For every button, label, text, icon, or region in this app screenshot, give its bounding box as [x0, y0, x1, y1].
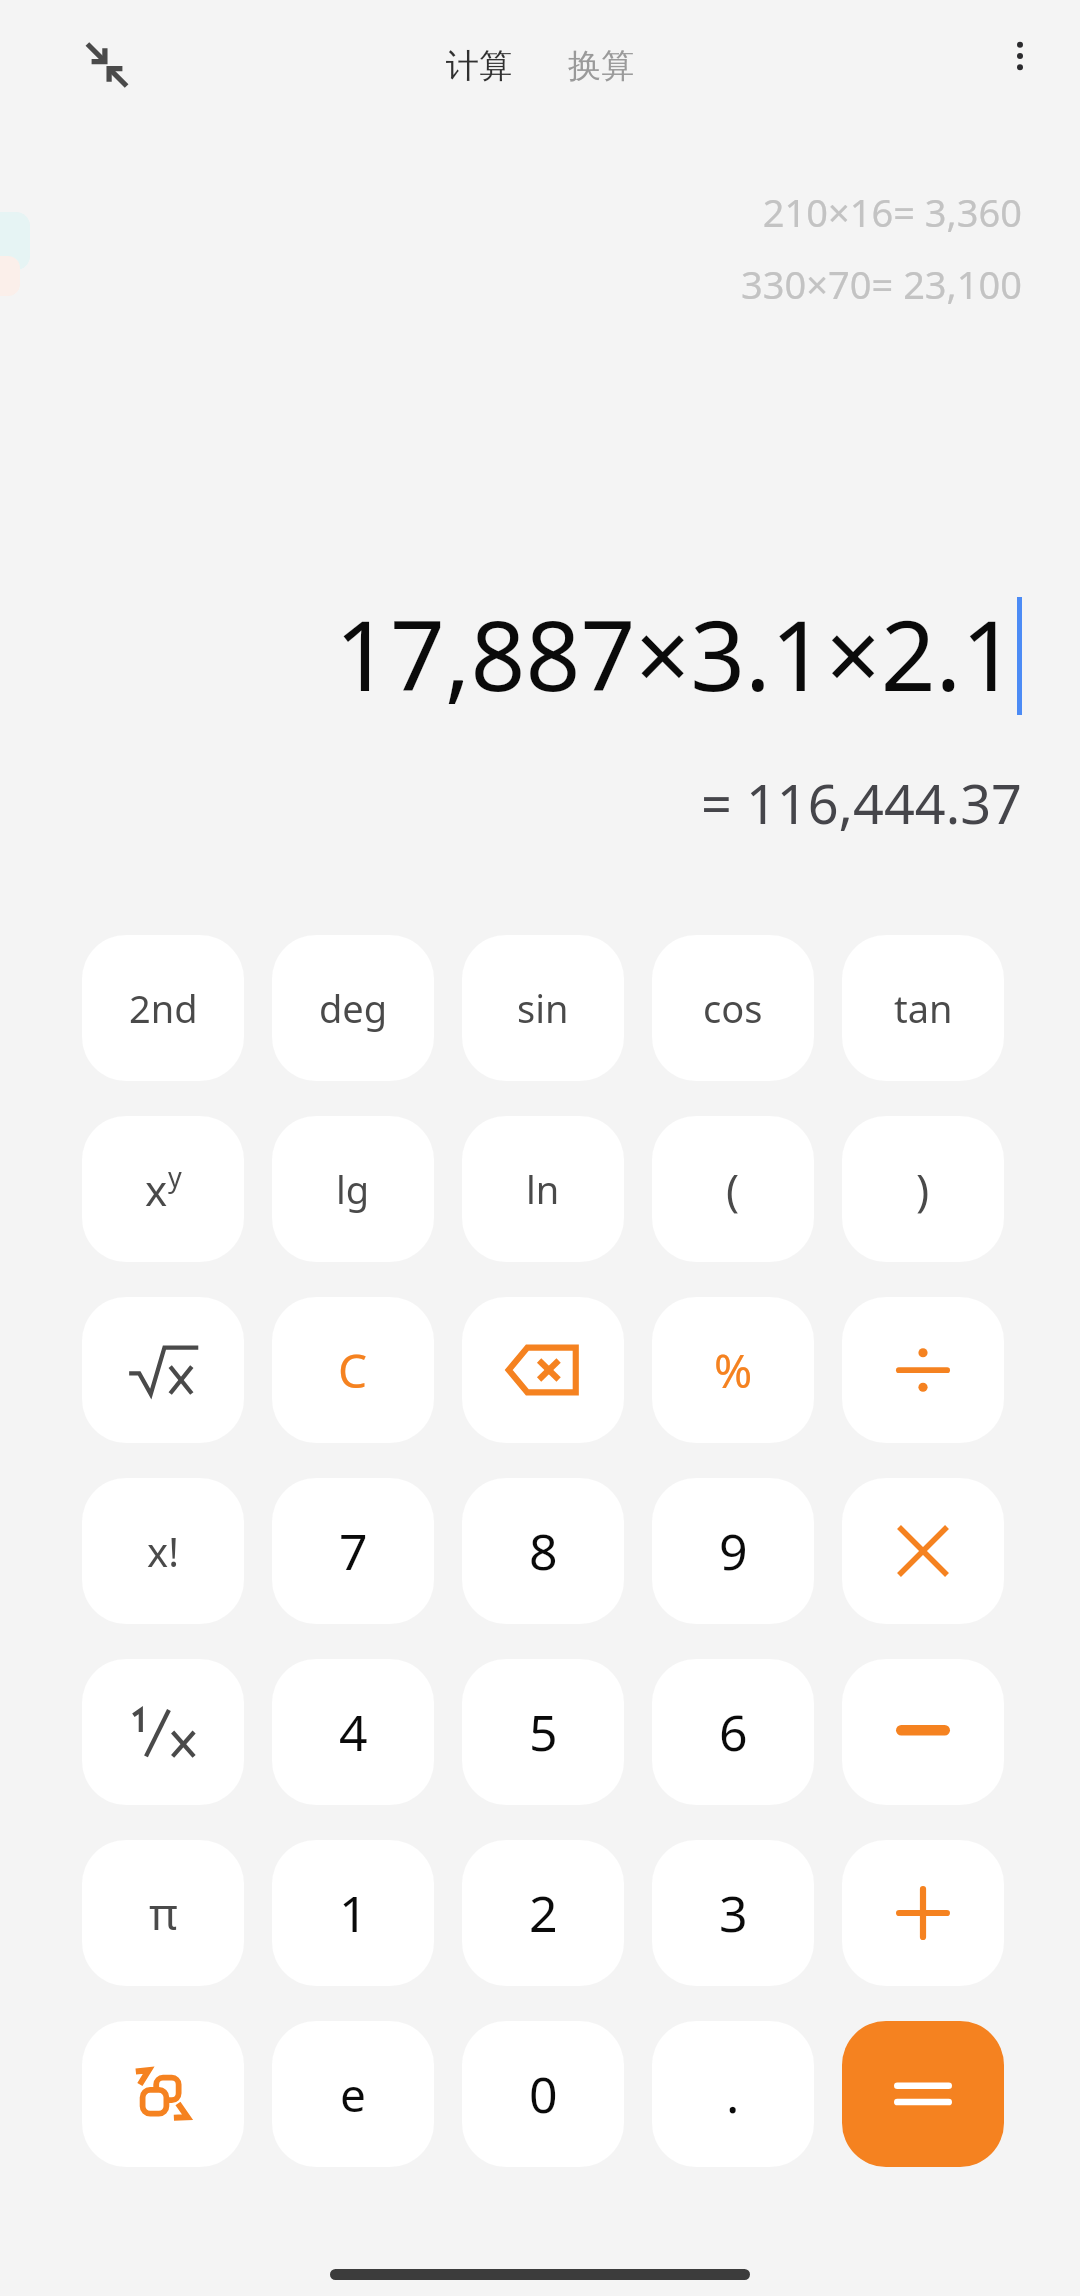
staticText: e [340, 2063, 366, 2126]
button[interactable]: ) [842, 1116, 1004, 1262]
staticText: 0 [529, 2060, 558, 2128]
button[interactable]: deg [272, 935, 434, 1081]
button[interactable]: 0 [462, 2021, 624, 2167]
staticText: 1 [339, 1879, 368, 1947]
button[interactable]: . [652, 2021, 814, 2167]
button[interactable]: tan [842, 935, 1004, 1081]
button[interactable]: 2 [462, 1840, 624, 1986]
button[interactable]: 换算 [558, 39, 644, 93]
button[interactable]: Plus [842, 1840, 1004, 1986]
staticText: 8 [529, 1517, 558, 1585]
button[interactable]: sin [462, 935, 624, 1081]
staticText: x! [147, 1524, 179, 1578]
button[interactable]: cos [652, 935, 814, 1081]
button[interactable]: x to the power y [82, 1116, 244, 1262]
button[interactable]: Collapse [72, 30, 142, 100]
staticText: 9 [719, 1517, 748, 1585]
staticText: ) [916, 1159, 930, 1219]
staticText: 6 [719, 1698, 748, 1766]
button[interactable]: 1 [272, 1840, 434, 1986]
button[interactable]: Minus [842, 1659, 1004, 1805]
staticText: y [168, 1158, 182, 1195]
staticText: x [145, 1161, 168, 1218]
staticText: 7 [339, 1517, 368, 1585]
button[interactable]: 计算 [436, 39, 522, 93]
button[interactable]: Reciprocal [82, 1659, 244, 1805]
staticText: lg [336, 1163, 370, 1215]
staticText: 3 [719, 1879, 748, 1947]
button[interactable]: 4 [272, 1659, 434, 1805]
staticText: C [338, 1339, 368, 1402]
staticText: % [714, 1339, 753, 1402]
button[interactable]: Equals [842, 2021, 1004, 2167]
staticText: 330×70= 23,100 [741, 258, 1022, 310]
staticText: 计算 [446, 45, 512, 87]
staticText: . [726, 2060, 740, 2128]
staticText: ( [726, 1159, 740, 1219]
staticText: 5 [529, 1698, 558, 1766]
button[interactable]: Square root [82, 1297, 244, 1443]
button[interactable]: 6 [652, 1659, 814, 1805]
button[interactable]: π [82, 1840, 244, 1986]
button[interactable]: Divide [842, 1297, 1004, 1443]
button[interactable]: 9 [652, 1478, 814, 1624]
staticText: ln [526, 1163, 560, 1215]
button[interactable]: Backspace [462, 1297, 624, 1443]
button[interactable]: x! [82, 1478, 244, 1624]
staticText: 换算 [568, 45, 634, 87]
button[interactable]: C [272, 1297, 434, 1443]
button[interactable]: 5 [462, 1659, 624, 1805]
staticText: π [149, 1883, 178, 1943]
button[interactable]: e [272, 2021, 434, 2167]
button[interactable]: 7 [272, 1478, 434, 1624]
button[interactable]: More options [982, 18, 1058, 94]
staticText: cos [703, 982, 763, 1034]
button[interactable]: Multiply [842, 1478, 1004, 1624]
staticText: 210×16= 3,360 [762, 186, 1022, 238]
staticText: deg [319, 982, 388, 1034]
staticText: sin [517, 982, 569, 1034]
staticText: 2nd [129, 982, 198, 1034]
button[interactable]: ln [462, 1116, 624, 1262]
button[interactable]: lg [272, 1116, 434, 1262]
button[interactable]: 8 [462, 1478, 624, 1624]
staticText: 2 [529, 1879, 558, 1947]
button[interactable]: ( [652, 1116, 814, 1262]
button[interactable]: Random number [82, 2021, 244, 2167]
button[interactable]: 2nd [82, 935, 244, 1081]
staticText: tan [894, 982, 953, 1034]
staticText: = 116,444.37 [701, 766, 1022, 840]
staticText: 17,887×3.1×2.1 [335, 588, 1017, 719]
staticText: 4 [339, 1698, 368, 1766]
button[interactable]: 3 [652, 1840, 814, 1986]
button[interactable]: % [652, 1297, 814, 1443]
